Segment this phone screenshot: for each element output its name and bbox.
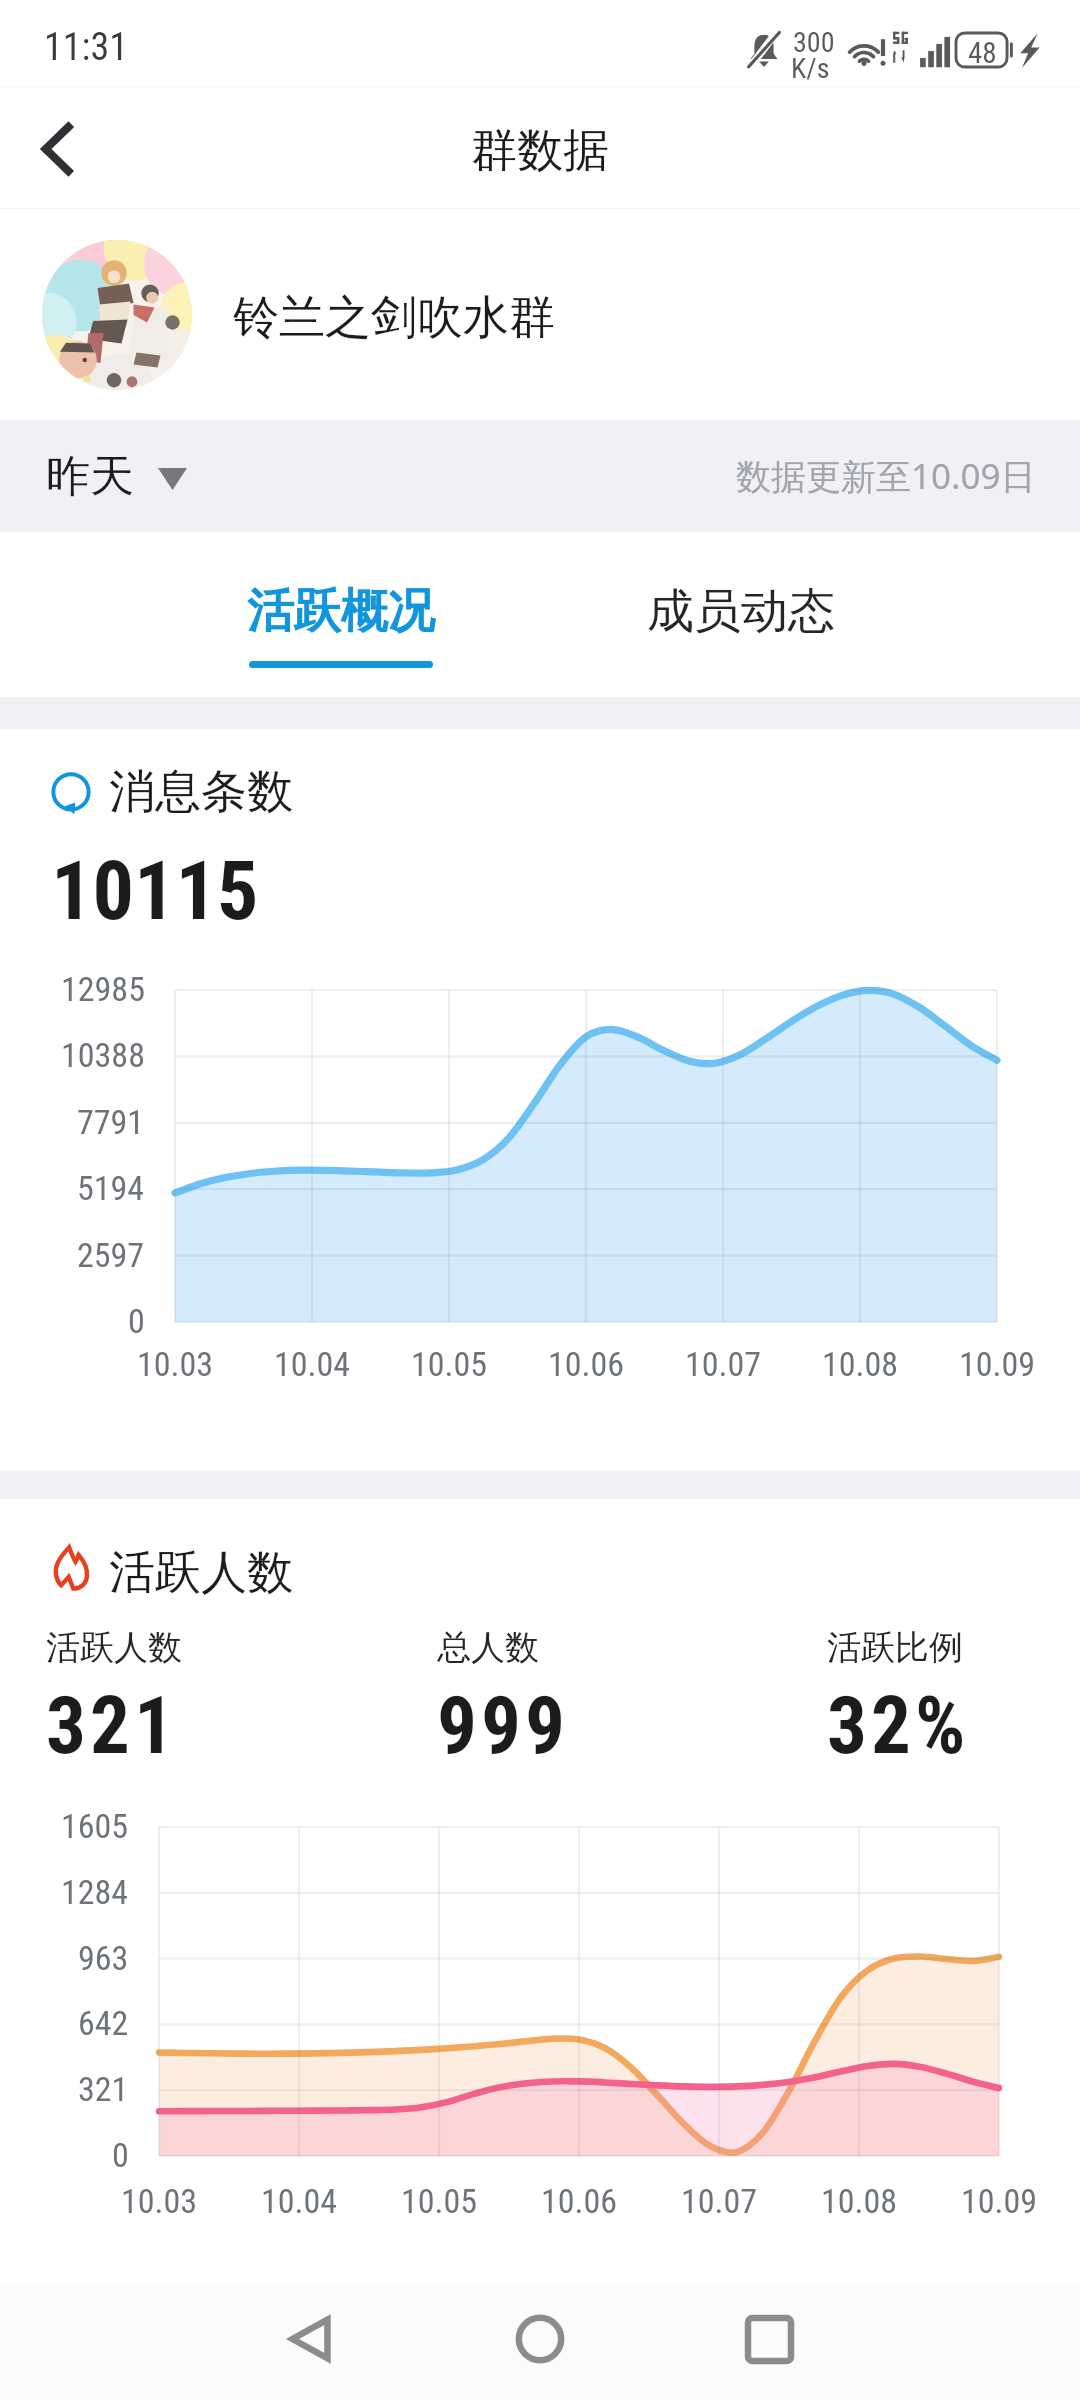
button[interactable]: Recents [709,2284,829,2400]
staticText: 总人数 [437,1626,539,1669]
staticText: 活跃人数 [109,1544,293,1602]
staticText: K/s [791,52,830,85]
button[interactable]: Home [480,2284,600,2400]
staticText: 10.04 [261,2181,338,2221]
staticText: 48 [968,36,997,70]
staticText: 活跃比例 [827,1626,963,1669]
staticText: 活跃概况 [247,582,435,641]
button[interactable]: 活跃比例 [827,1626,970,1773]
staticText: 10.04 [274,1344,351,1384]
button[interactable]: 活跃人数 [46,1626,182,1773]
staticText: 5194 [77,1168,145,1208]
staticText: 10.06 [548,1344,625,1384]
staticText: 10.07 [681,2181,758,2221]
staticText: 数据更新至10.09日 [736,452,1036,500]
staticText: 300 [793,26,835,59]
staticText: 1605 [61,1806,129,1846]
staticText: 12985 [61,969,145,1009]
button[interactable]: Back [250,2284,370,2400]
staticText: 成员动态 [647,582,835,641]
button[interactable]: 活跃概况 [221,532,461,697]
staticText: 11:31 [44,25,128,70]
staticText: 7791 [77,1102,145,1142]
staticText: 10.09 [961,2181,1038,2221]
staticText: 10115 [51,843,259,939]
staticText: 10.08 [822,1344,899,1384]
staticText: 0 [112,2135,129,2175]
button[interactable]: 总人数 [437,1626,569,1773]
staticText: 321 [78,2069,129,2109]
button[interactable]: 昨天 [46,449,187,504]
staticText: 999 [437,1680,569,1773]
staticText: 10.03 [137,1344,214,1384]
staticText: 0 [128,1301,145,1341]
button[interactable]: Back [16,108,98,190]
staticText: 群数据 [471,122,609,180]
button[interactable]: 铃兰之剑吹水群 [0,210,1080,420]
staticText: 10.05 [411,1344,488,1384]
staticText: 642 [78,2003,129,2043]
staticText: 10.08 [821,2181,898,2221]
staticText: 963 [78,1938,129,1978]
button[interactable]: 成员动态 [621,532,861,697]
staticText: 铃兰之剑吹水群 [233,289,555,347]
staticText: 10.03 [121,2181,198,2221]
staticText: 10.07 [685,1344,762,1384]
staticText: 321 [46,1680,178,1773]
staticText: 32% [827,1680,970,1773]
staticText: 10.09 [959,1344,1036,1384]
staticText: 10388 [61,1035,145,1075]
staticText: 消息条数 [109,763,293,821]
staticText: 活跃人数 [46,1626,182,1669]
staticText: 2597 [77,1235,145,1275]
staticText: 1284 [61,1872,129,1912]
staticText: 10.05 [401,2181,478,2221]
staticText: 10.06 [541,2181,618,2221]
staticText: 昨天 [46,449,134,504]
